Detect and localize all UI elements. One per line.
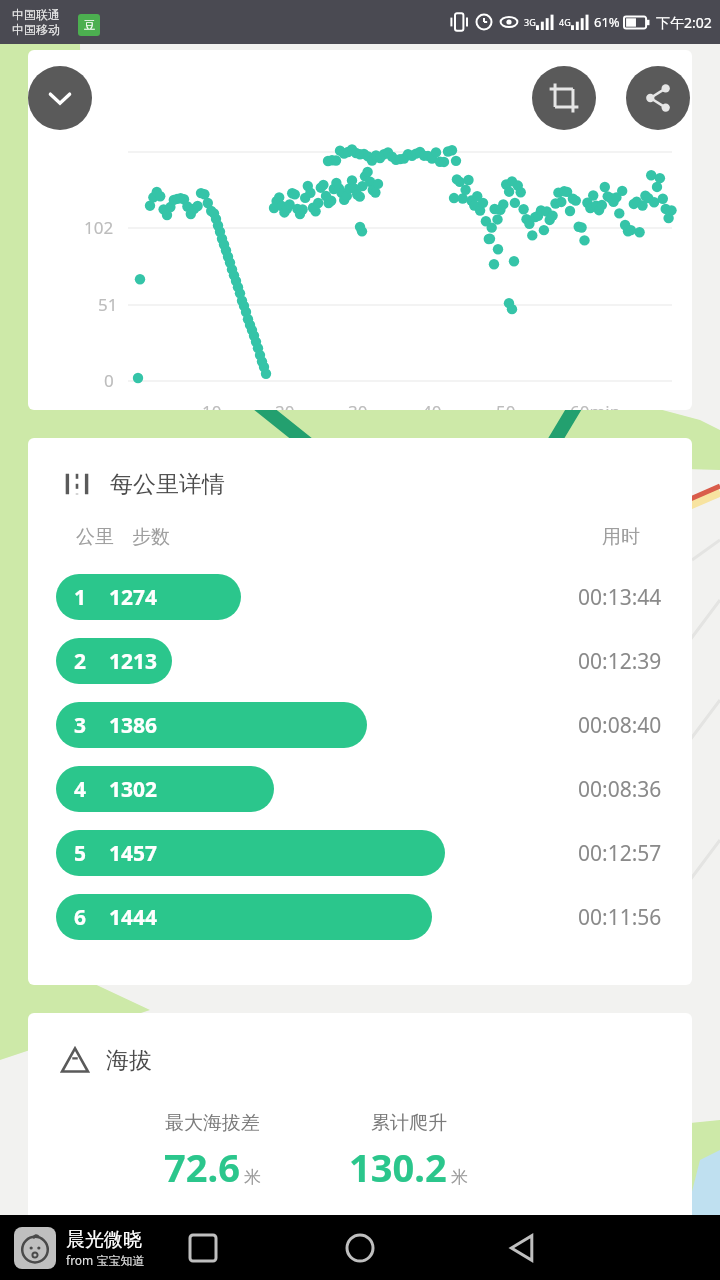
staticText: 米 xyxy=(244,1167,261,1188)
staticText: 3 xyxy=(74,711,87,740)
staticText: 60min xyxy=(570,400,621,410)
staticText: 4G xyxy=(559,16,571,28)
staticText: 1444 xyxy=(109,903,158,932)
staticText: 公里 xyxy=(76,525,114,549)
staticText: 米 xyxy=(451,1167,468,1188)
staticText: 130.2 xyxy=(349,1141,447,1193)
staticText: 00:12:39 xyxy=(578,647,662,676)
staticText: 5 xyxy=(74,839,87,868)
button[interactable]: Share xyxy=(626,66,690,130)
button[interactable]: Recent apps xyxy=(175,1220,231,1276)
staticText: 1386 xyxy=(109,711,158,740)
button[interactable]: 6 xyxy=(28,885,692,949)
button[interactable]: 4 xyxy=(28,757,692,821)
button[interactable]: Crop xyxy=(532,66,596,130)
button[interactable]: 1 xyxy=(28,565,692,629)
staticText: 00:13:44 xyxy=(578,583,662,612)
staticText: 每公里详情 xyxy=(110,470,225,499)
staticText: 30 xyxy=(348,400,368,410)
staticText: 10 xyxy=(202,400,222,410)
staticText: 1 xyxy=(74,583,87,612)
staticText: 用时 xyxy=(602,525,640,549)
staticText: 102 xyxy=(84,216,114,239)
staticText: 步数 xyxy=(132,525,170,549)
staticText: 累计爬升 xyxy=(371,1111,447,1135)
staticText: 最大海拔差 xyxy=(165,1111,260,1135)
staticText: 1274 xyxy=(109,583,158,612)
staticText: 1213 xyxy=(109,647,158,676)
staticText: 00:08:36 xyxy=(578,775,662,804)
staticText: 下午2:02 xyxy=(656,13,712,32)
button[interactable]: Back xyxy=(492,1218,552,1278)
staticText: 20 xyxy=(275,400,295,410)
button[interactable]: 3 xyxy=(28,693,692,757)
staticText: 豆 xyxy=(84,18,95,32)
staticText: 61% xyxy=(594,13,620,31)
staticText: 51 xyxy=(98,293,118,316)
button[interactable]: 2 xyxy=(28,629,692,693)
staticText: 1457 xyxy=(109,839,158,868)
staticText: 4 xyxy=(74,775,87,804)
staticText: 中国联通 xyxy=(12,7,60,22)
button[interactable]: 5 xyxy=(28,821,692,885)
staticText: 3G xyxy=(524,16,536,28)
staticText: 00:11:56 xyxy=(578,903,662,932)
staticText: 2 xyxy=(74,647,87,676)
button[interactable]: Home xyxy=(330,1218,390,1278)
staticText: 00:12:57 xyxy=(578,839,662,868)
staticText: 00:08:40 xyxy=(578,711,662,740)
staticText: 晨光微晓 xyxy=(66,1228,142,1252)
staticText: 40 xyxy=(422,400,442,410)
staticText: 50 xyxy=(496,400,516,410)
staticText: 6 xyxy=(74,903,87,932)
staticText: 0 xyxy=(104,369,114,392)
button[interactable]: Collapse xyxy=(28,66,92,130)
staticText: 中国移动 xyxy=(12,22,60,37)
staticText: 1302 xyxy=(109,775,158,804)
staticText: 海拔 xyxy=(106,1046,152,1075)
staticText: 72.6 xyxy=(164,1141,240,1193)
staticText: from 宝宝知道 xyxy=(66,1252,145,1268)
